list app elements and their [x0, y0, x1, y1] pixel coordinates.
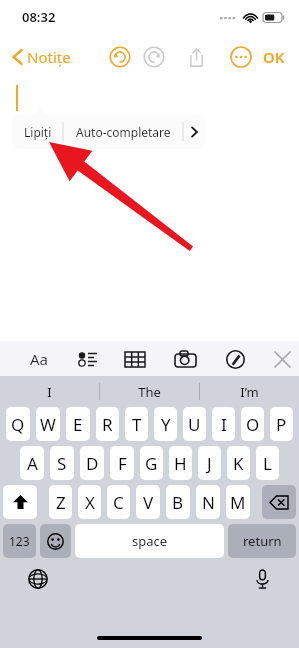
- staticText: H: [174, 452, 187, 475]
- staticText: C: [113, 491, 124, 514]
- button[interactable]: U: [183, 407, 206, 441]
- staticText: N: [202, 491, 215, 514]
- staticText: 123: [9, 533, 30, 549]
- button[interactable]: V: [136, 485, 160, 519]
- staticText: O: [246, 413, 260, 436]
- button[interactable]: H: [169, 446, 192, 480]
- staticText: A: [27, 452, 38, 475]
- staticText: E: [73, 413, 83, 436]
- button[interactable]: Auto-completare: [63, 114, 183, 149]
- button[interactable]: Camera: [168, 344, 202, 374]
- button[interactable]: Undo: [105, 42, 135, 72]
- button[interactable]: D: [80, 446, 104, 480]
- button[interactable]: L: [256, 446, 279, 480]
- staticText: T: [132, 413, 142, 436]
- button[interactable]: M: [226, 485, 250, 519]
- button[interactable]: return: [228, 524, 296, 558]
- button[interactable]: Text format: [22, 344, 56, 374]
- button[interactable]: K: [227, 446, 250, 480]
- staticText: D: [86, 452, 99, 475]
- staticText: Aa: [30, 349, 49, 369]
- button[interactable]: Markup: [218, 344, 252, 374]
- button[interactable]: A: [20, 446, 44, 480]
- button[interactable]: Close: [266, 344, 299, 374]
- button[interactable]: Z: [49, 485, 72, 519]
- button[interactable]: Backspace: [262, 485, 296, 519]
- button[interactable]: O: [241, 407, 264, 441]
- button[interactable]: J: [198, 446, 221, 480]
- staticText: S: [57, 452, 67, 475]
- button[interactable]: T: [125, 407, 148, 441]
- button[interactable]: Lipiți: [12, 114, 63, 149]
- staticText: U: [188, 413, 201, 436]
- button[interactable]: P: [270, 407, 293, 441]
- staticText: W: [40, 413, 56, 436]
- button[interactable]: More: [226, 42, 256, 72]
- staticText: G: [145, 452, 158, 475]
- staticText: J: [207, 452, 212, 475]
- button[interactable]: The: [100, 376, 199, 407]
- button[interactable]: Share: [181, 42, 211, 72]
- button[interactable]: N: [196, 485, 220, 519]
- staticText: space: [132, 532, 168, 550]
- button[interactable]: Notițe: [8, 43, 75, 71]
- staticText: The: [138, 383, 161, 401]
- staticText: X: [85, 491, 95, 514]
- button[interactable]: Table: [118, 344, 152, 374]
- button[interactable]: More options: [183, 114, 205, 149]
- button[interactable]: B: [166, 485, 190, 519]
- staticText: M: [230, 491, 246, 514]
- button[interactable]: Y: [154, 407, 177, 441]
- button[interactable]: 123: [3, 524, 36, 558]
- staticText: Auto-completare: [76, 124, 171, 140]
- button[interactable]: Dictate: [249, 566, 275, 592]
- button[interactable]: I: [212, 407, 235, 441]
- staticText: I’m: [240, 383, 259, 401]
- staticText: Z: [56, 491, 66, 514]
- button[interactable]: Change keyboard: [25, 566, 51, 592]
- staticText: L: [263, 452, 272, 475]
- staticText: OK: [263, 47, 285, 67]
- button[interactable]: X: [78, 485, 101, 519]
- staticText: I: [47, 383, 52, 401]
- staticText: return: [243, 532, 282, 550]
- button[interactable]: Emoji: [40, 524, 71, 558]
- staticText: V: [143, 491, 154, 514]
- staticText: Y: [161, 413, 171, 436]
- button[interactable]: Redo: [139, 42, 169, 72]
- button[interactable]: OK: [259, 43, 289, 71]
- staticText: Notițe: [27, 47, 71, 67]
- button[interactable]: W: [36, 407, 60, 441]
- button[interactable]: space: [75, 524, 224, 558]
- staticText: P: [276, 413, 287, 436]
- button[interactable]: I’m: [200, 376, 299, 407]
- staticText: Lipiți: [24, 124, 52, 140]
- staticText: I: [221, 413, 227, 436]
- staticText: R: [102, 413, 113, 436]
- button[interactable]: C: [107, 485, 130, 519]
- button[interactable]: G: [140, 446, 163, 480]
- button[interactable]: Shift: [3, 485, 37, 519]
- button[interactable]: S: [50, 446, 74, 480]
- button[interactable]: Q: [6, 407, 30, 441]
- staticText: K: [233, 452, 244, 475]
- staticText: 08:32: [22, 8, 56, 26]
- button[interactable]: Checklist: [70, 344, 104, 374]
- button[interactable]: R: [96, 407, 119, 441]
- staticText: B: [172, 491, 184, 514]
- staticText: Q: [11, 413, 25, 436]
- button[interactable]: E: [66, 407, 90, 441]
- staticText: F: [118, 452, 127, 475]
- button[interactable]: I: [0, 376, 99, 407]
- button[interactable]: F: [110, 446, 134, 480]
